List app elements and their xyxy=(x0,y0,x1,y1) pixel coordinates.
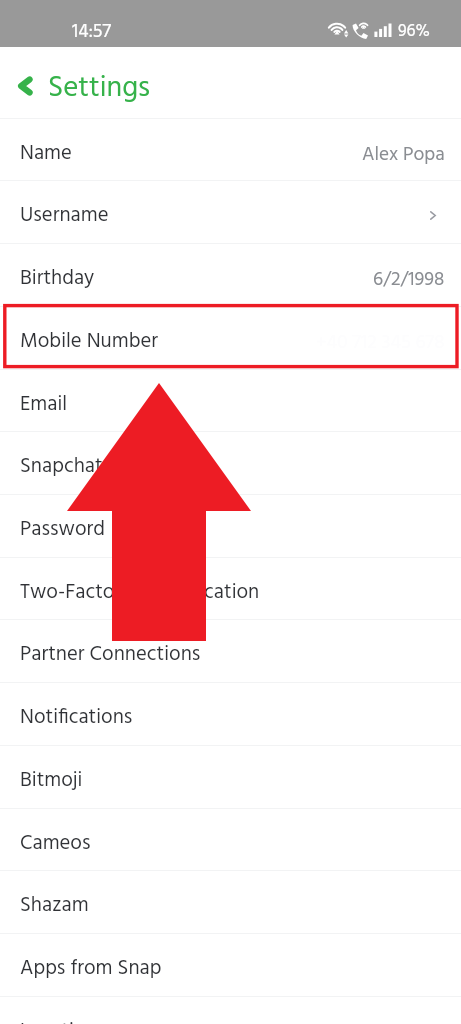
button[interactable]: Bitmoji xyxy=(0,745,461,808)
staticText: Alex Popa xyxy=(362,140,445,171)
button[interactable]: Apps from Snap xyxy=(0,933,461,996)
button[interactable]: Email xyxy=(0,369,461,432)
button[interactable]: Username xyxy=(0,180,461,243)
staticText: 96% xyxy=(398,18,430,45)
button[interactable]: Password xyxy=(0,494,461,557)
button[interactable]: Mobile Number xyxy=(0,306,461,369)
staticText: Settings xyxy=(48,65,151,111)
staticText: Birthday xyxy=(20,262,95,295)
button[interactable]: Name xyxy=(0,118,461,181)
button[interactable]: Back xyxy=(0,54,161,112)
staticText: Shazam xyxy=(20,889,89,922)
button[interactable]: Shazam xyxy=(0,870,461,933)
staticText: Two-Factor Authentication xyxy=(20,576,260,609)
button[interactable]: Birthday xyxy=(0,243,461,306)
staticText: Cameos xyxy=(20,827,91,860)
staticText: Username xyxy=(20,199,109,232)
staticText: 6/2/1998 xyxy=(373,265,445,296)
staticText: Name xyxy=(20,137,72,170)
other: Open xyxy=(430,211,436,220)
staticText: Password xyxy=(20,513,105,546)
staticText: Notifications xyxy=(20,701,133,734)
button[interactable]: Snapchat xyxy=(0,431,461,494)
button[interactable]: Location xyxy=(0,996,461,1024)
staticText: Bitmoji xyxy=(20,764,83,797)
staticText: Snapchat xyxy=(20,450,103,483)
staticText: 14:57 xyxy=(72,17,112,47)
other: Back xyxy=(18,75,32,97)
staticText: Location xyxy=(20,1015,97,1024)
staticText: Mobile Number xyxy=(20,325,158,358)
staticText: Email xyxy=(20,388,68,421)
button[interactable]: Notifications xyxy=(0,682,461,745)
button[interactable]: Cameos xyxy=(0,808,461,871)
button[interactable]: Partner Connections xyxy=(0,619,461,682)
button[interactable]: Two-Factor Authentication xyxy=(0,557,461,620)
staticText: Partner Connections xyxy=(20,638,201,671)
staticText: Apps from Snap xyxy=(20,952,162,985)
